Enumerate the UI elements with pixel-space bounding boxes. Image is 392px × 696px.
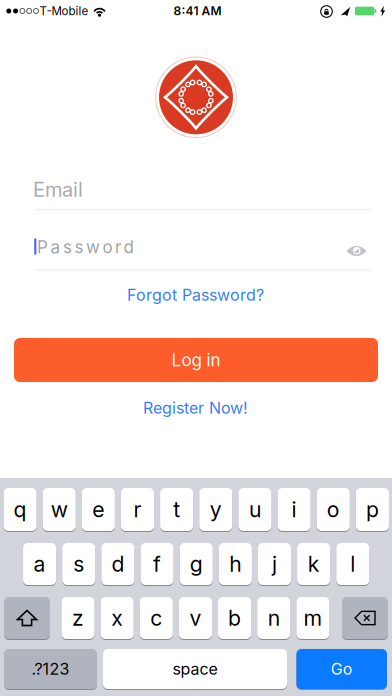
- button[interactable]: Go: [296, 649, 387, 690]
- button[interactable]: .?123: [4, 649, 97, 690]
- staticText: s: [63, 237, 72, 257]
- staticText: 8:41 AM: [173, 4, 221, 18]
- button[interactable]: u: [238, 488, 271, 532]
- staticText: f: [153, 551, 161, 576]
- button[interactable]: Shift: [4, 597, 50, 640]
- button[interactable]: d: [101, 543, 134, 586]
- staticText: b: [228, 605, 241, 630]
- button[interactable]: f: [140, 543, 174, 586]
- staticText: w: [86, 237, 100, 257]
- staticText: d: [111, 551, 124, 576]
- staticText: n: [268, 605, 280, 630]
- staticText: r: [133, 497, 141, 522]
- staticText: p: [366, 497, 379, 522]
- button[interactable]: r: [121, 488, 154, 532]
- button[interactable]: h: [219, 543, 252, 586]
- button[interactable]: v: [179, 597, 212, 640]
- staticText: a: [50, 237, 60, 257]
- staticText: m: [303, 605, 322, 630]
- button[interactable]: b: [218, 597, 251, 640]
- button[interactable]: c: [140, 597, 173, 640]
- staticText: P: [37, 237, 48, 257]
- staticText: i: [292, 497, 297, 522]
- staticText: y: [210, 497, 222, 522]
- staticText: e: [92, 497, 104, 522]
- staticText: Register Now!: [143, 399, 248, 417]
- button[interactable]: a: [23, 543, 56, 586]
- button[interactable]: g: [180, 543, 213, 586]
- button[interactable]: w: [43, 488, 76, 532]
- button[interactable]: l: [336, 543, 369, 586]
- staticText: Email: [33, 178, 83, 201]
- staticText: o: [327, 497, 340, 522]
- staticText: Go: [331, 660, 353, 678]
- button[interactable]: p: [356, 488, 389, 532]
- staticText: space: [172, 660, 217, 678]
- staticText: s: [73, 551, 84, 576]
- staticText: T-Mobile: [39, 4, 88, 18]
- staticText: j: [272, 551, 277, 576]
- staticText: u: [249, 497, 261, 522]
- button[interactable]: m: [296, 597, 329, 640]
- button[interactable]: j: [258, 543, 291, 586]
- button[interactable]: n: [257, 597, 290, 640]
- button[interactable]: Forgot Password?: [127, 286, 264, 304]
- button[interactable]: o: [317, 488, 350, 532]
- button[interactable]: i: [278, 488, 311, 532]
- staticText: q: [14, 497, 27, 522]
- button[interactable]: Log in: [14, 338, 378, 382]
- button[interactable]: y: [199, 488, 232, 532]
- staticText: c: [150, 605, 162, 630]
- staticText: d: [123, 237, 133, 257]
- button[interactable]: x: [101, 597, 134, 640]
- button[interactable]: t: [160, 488, 193, 532]
- button[interactable]: space: [103, 649, 287, 690]
- button[interactable]: e: [82, 488, 115, 532]
- staticText: r: [115, 237, 121, 257]
- button[interactable]: Show password: [345, 243, 367, 259]
- button[interactable]: s: [62, 543, 95, 586]
- staticText: Log in: [171, 350, 220, 370]
- staticText: a: [34, 551, 46, 576]
- staticText: v: [189, 605, 201, 630]
- staticText: k: [308, 551, 320, 576]
- button[interactable]: Register Now!: [143, 399, 248, 417]
- button[interactable]: z: [61, 597, 95, 640]
- staticText: w: [51, 497, 68, 522]
- staticText: h: [229, 551, 241, 576]
- staticText: x: [111, 605, 123, 630]
- staticText: .?123: [31, 660, 69, 678]
- staticText: Forgot Password?: [127, 286, 264, 304]
- staticText: l: [350, 551, 355, 576]
- button[interactable]: Delete: [342, 597, 388, 640]
- staticText: t: [173, 497, 180, 522]
- staticText: s: [74, 237, 83, 257]
- staticText: z: [72, 605, 84, 630]
- staticText: g: [190, 551, 203, 576]
- button[interactable]: q: [3, 488, 37, 532]
- staticText: o: [102, 237, 112, 257]
- button[interactable]: k: [297, 543, 330, 586]
